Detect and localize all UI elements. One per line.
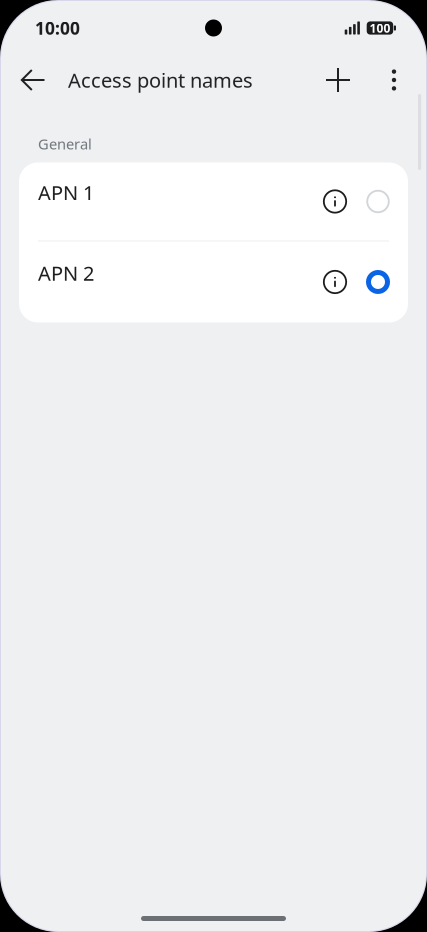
button[interactable]: Selected bbox=[358, 262, 398, 302]
button[interactable]: Select bbox=[358, 181, 398, 221]
staticText: Access point names bbox=[68, 67, 253, 93]
button[interactable]: Back bbox=[10, 56, 56, 104]
staticText: 100 bbox=[369, 20, 390, 36]
button[interactable]: More options bbox=[374, 56, 414, 104]
button[interactable]: APN details bbox=[315, 181, 355, 221]
staticText: APN 2 bbox=[38, 260, 94, 286]
staticText: General bbox=[38, 134, 92, 153]
button[interactable]: APN details bbox=[315, 262, 355, 302]
button[interactable]: APN 1 bbox=[19, 162, 408, 240]
button[interactable]: APN 2 bbox=[19, 241, 408, 322]
staticText: APN 1 bbox=[38, 179, 94, 206]
button[interactable]: Add APN bbox=[302, 56, 374, 104]
staticText: 10:00 bbox=[35, 16, 80, 39]
